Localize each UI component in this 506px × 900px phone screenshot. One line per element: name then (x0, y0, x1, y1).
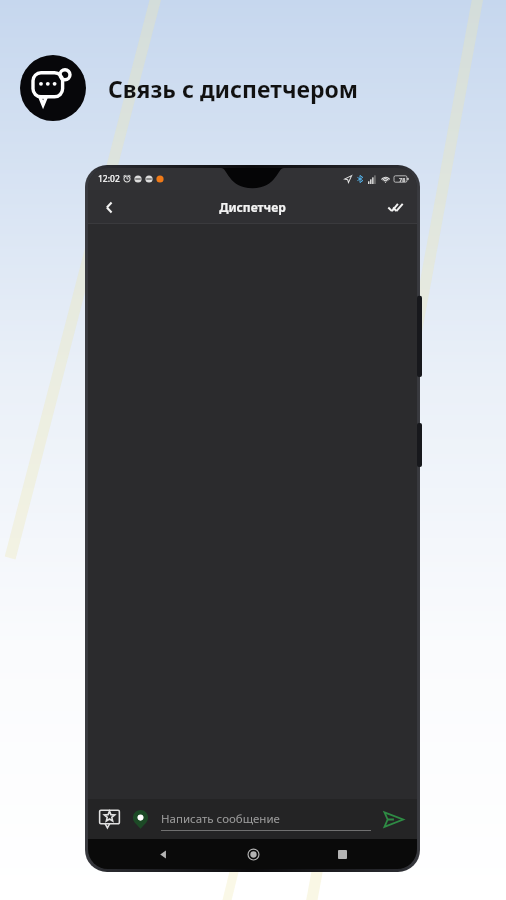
staticText: Диспетчер (219, 199, 286, 215)
staticText: 12:02 (98, 173, 120, 185)
button[interactable]: Chat with dispatcher (20, 55, 86, 121)
staticText: 78 (399, 176, 406, 183)
button[interactable]: Quick replies (96, 806, 122, 832)
button[interactable]: Back (148, 839, 178, 869)
button[interactable]: Написать сообщение (161, 804, 371, 834)
button[interactable]: Send (377, 803, 409, 835)
staticText: Написать сообщение (161, 811, 280, 827)
button[interactable]: Home (238, 839, 268, 869)
button[interactable]: Send location (127, 806, 153, 832)
staticText: Связь с диспетчером (108, 73, 359, 104)
button[interactable]: Recent apps (327, 839, 357, 869)
button[interactable]: Mark all read (378, 190, 412, 224)
button[interactable]: Back (92, 190, 126, 224)
